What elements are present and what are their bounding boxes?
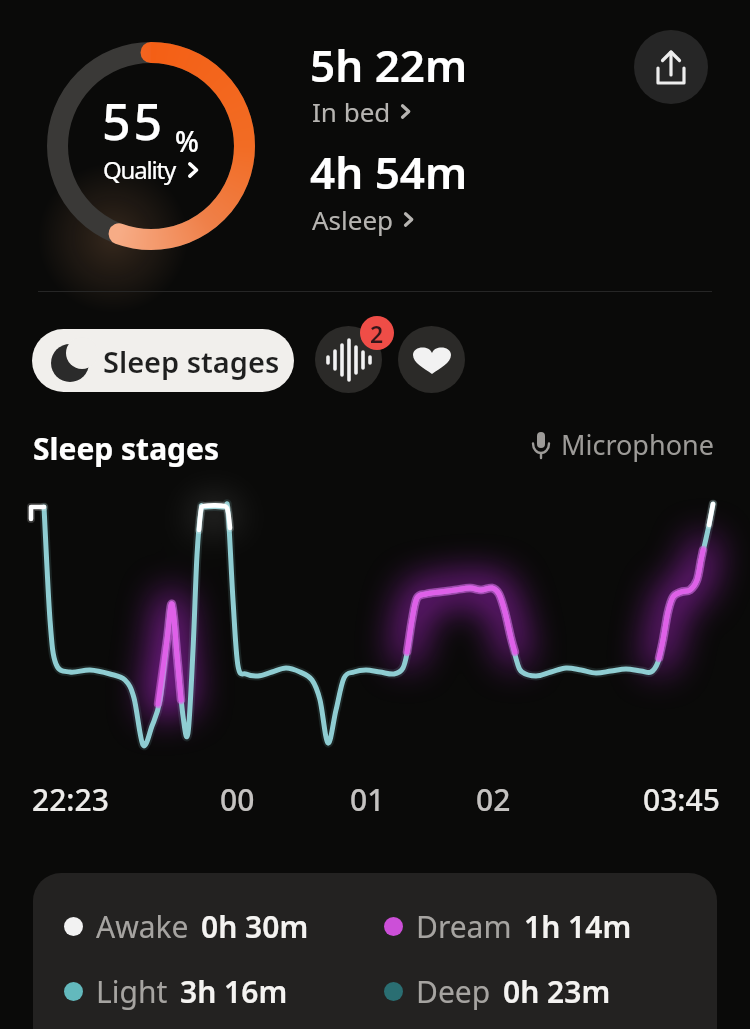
- staticText: Deep: [416, 971, 491, 1012]
- staticText: 01: [350, 779, 385, 820]
- button[interactable]: [398, 326, 465, 393]
- staticText: %: [175, 122, 199, 160]
- staticText: 0h 23m: [503, 971, 611, 1012]
- staticText: 4h 54m: [310, 142, 468, 202]
- button[interactable]: Light: [64, 971, 288, 1012]
- staticText: 02: [476, 779, 511, 820]
- button[interactable]: Sleep stages: [32, 329, 294, 392]
- button[interactable]: Asleep: [312, 202, 416, 237]
- staticText: 0h 30m: [201, 906, 309, 947]
- button[interactable]: Microphone: [531, 426, 714, 463]
- button[interactable]: In bed: [312, 94, 413, 129]
- staticText: Sleep stages: [33, 428, 220, 469]
- staticText: 3h 16m: [180, 971, 288, 1012]
- button[interactable]: [634, 30, 708, 104]
- staticText: 2: [370, 318, 384, 349]
- button[interactable]: [315, 326, 382, 393]
- staticText: In bed: [312, 94, 391, 129]
- staticText: Quality: [103, 153, 175, 186]
- button[interactable]: 55: [47, 42, 255, 250]
- staticText: Asleep: [312, 202, 394, 237]
- button[interactable]: Deep: [384, 971, 611, 1012]
- staticText: 1h 14m: [524, 906, 632, 947]
- staticText: 00: [220, 779, 255, 820]
- staticText: 55: [102, 87, 166, 155]
- button[interactable]: Awake: [64, 906, 309, 947]
- staticText: Microphone: [561, 426, 714, 463]
- staticText: 5h 22m: [310, 35, 468, 95]
- button[interactable]: Dream: [384, 906, 632, 947]
- staticText: Dream: [416, 906, 512, 947]
- staticText: 03:45: [643, 779, 720, 820]
- staticText: Awake: [96, 906, 189, 947]
- staticText: 22:23: [32, 779, 109, 820]
- staticText: Sleep stages: [103, 342, 280, 381]
- staticText: Light: [96, 971, 168, 1012]
